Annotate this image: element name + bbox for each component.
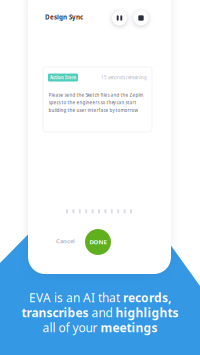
button[interactable]: DONE bbox=[85, 229, 111, 255]
staticText: Cancel bbox=[56, 237, 75, 245]
button[interactable]: Stop recording bbox=[133, 10, 148, 25]
button[interactable]: Pause recording bbox=[112, 10, 127, 25]
staticText: DONE bbox=[89, 238, 106, 246]
staticText: all of your meetings bbox=[42, 319, 157, 335]
staticText: Action Item bbox=[50, 75, 76, 80]
staticText: Design Sync bbox=[45, 13, 83, 21]
staticText: Please send the Sketch files and the Zep… bbox=[48, 92, 143, 113]
button[interactable]: Cancel bbox=[56, 235, 76, 247]
staticText: EVA is an AI that records, bbox=[29, 289, 171, 305]
staticText: 15 seconds remaining bbox=[101, 75, 147, 80]
staticText: transcribes and highlights bbox=[21, 304, 178, 320]
